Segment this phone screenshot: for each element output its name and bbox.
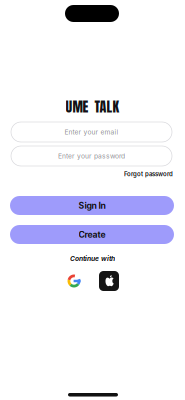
staticText: Sign In xyxy=(78,200,105,211)
staticText: Continue with xyxy=(70,254,115,263)
button[interactable]: Create xyxy=(10,225,174,244)
staticText: Create xyxy=(78,229,105,240)
staticText: Enter your email xyxy=(64,128,118,136)
button[interactable]: Enter your email xyxy=(11,122,172,142)
staticText: Forgot password xyxy=(124,170,173,178)
button[interactable]: Continue with Google xyxy=(64,271,84,291)
staticText: Enter your password xyxy=(58,152,125,160)
button[interactable]: Sign In xyxy=(10,196,174,215)
button[interactable]: Forgot password xyxy=(103,169,173,179)
button[interactable]: Continue with Apple xyxy=(99,271,119,291)
button[interactable]: Enter your password xyxy=(11,146,172,166)
staticText: UME TALK xyxy=(65,96,119,117)
